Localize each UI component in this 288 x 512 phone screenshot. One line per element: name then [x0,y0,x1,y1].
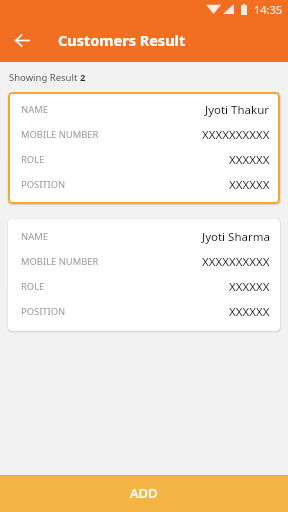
staticText: Jyoti Sharma [202,229,270,245]
staticText: XXXXXX [229,152,270,168]
staticText: MOBILE NUMBER [21,128,99,141]
staticText: XXXXXXXXXX [202,127,270,143]
button[interactable]: NAME [8,219,280,331]
button[interactable]: Back [0,18,44,62]
staticText: ROLE [21,280,45,293]
staticText: NAME [21,230,48,243]
staticText: ADD [130,484,158,502]
staticText: Showing Result [9,71,80,84]
staticText: XXXXXXXXXX [202,254,270,270]
staticText: ROLE [21,153,45,166]
staticText: MOBILE NUMBER [21,255,99,268]
staticText: 14:35 [254,2,283,17]
staticText: Jyoti Thakur [205,102,270,118]
staticText: XXXXXX [229,177,270,193]
button[interactable]: ADD [0,475,288,512]
staticText: POSITION [21,305,66,318]
staticText: NAME [21,103,48,116]
staticText: Customers Result [58,30,186,50]
staticText: XXXXXX [229,279,270,295]
staticText: 2 [80,71,86,84]
staticText: XXXXXX [229,304,270,320]
staticText: POSITION [21,178,66,191]
button[interactable]: NAME [8,92,280,204]
